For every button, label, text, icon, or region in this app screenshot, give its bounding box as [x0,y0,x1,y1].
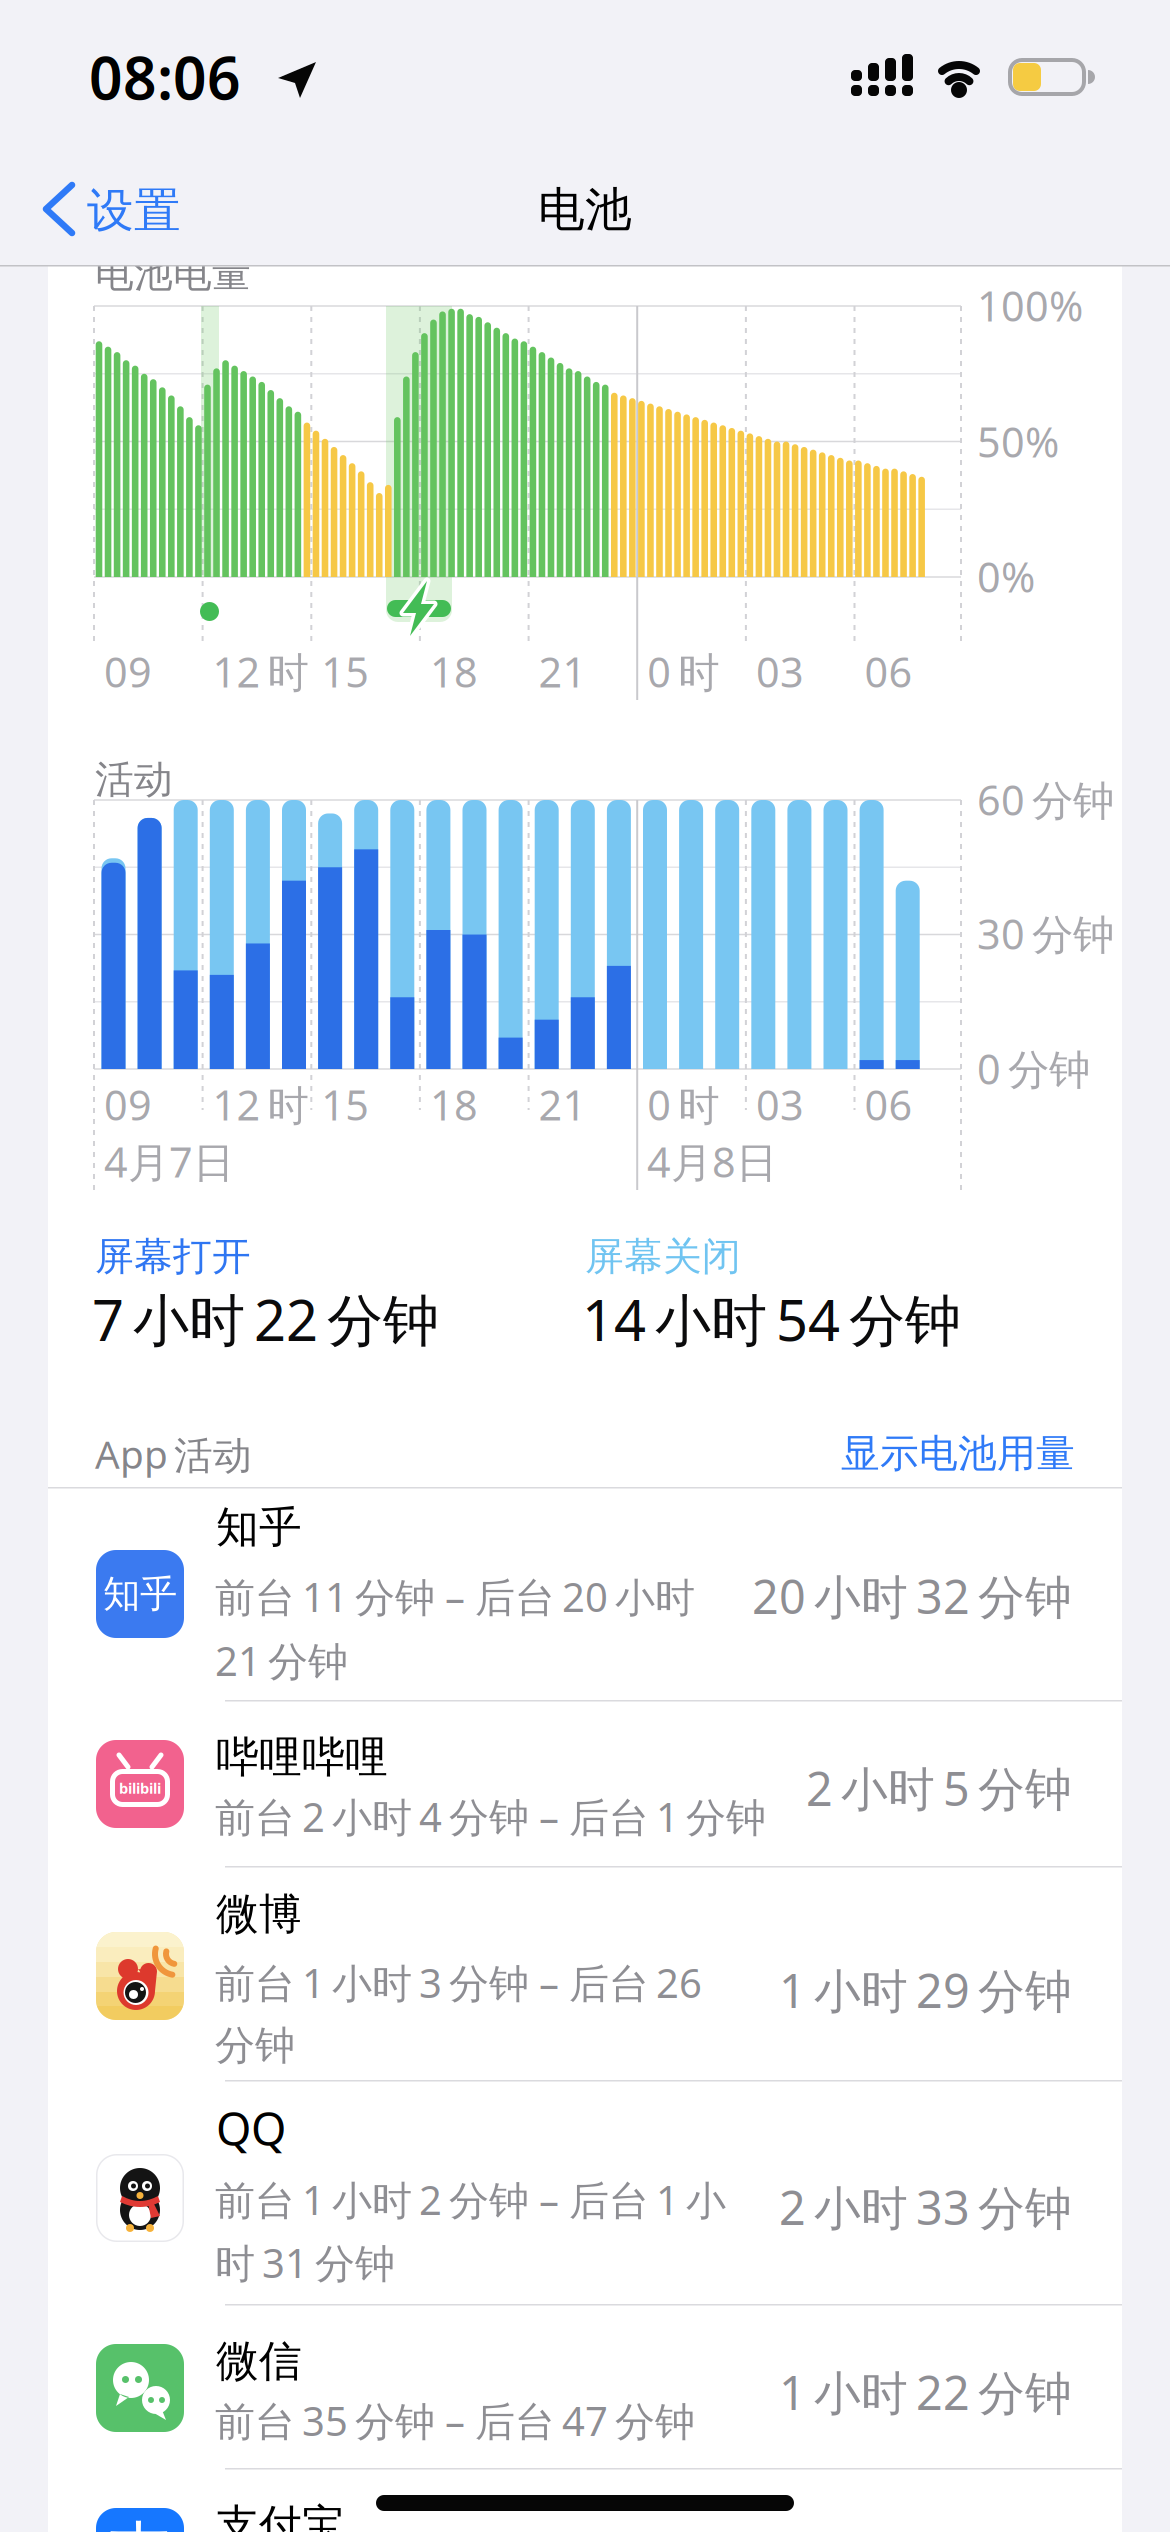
staticText: 哔哩哔哩 [216,1731,388,1783]
staticText: 50% [977,414,1059,469]
staticText: 100% [977,278,1083,333]
button[interactable]: 支 [48,2468,1122,2532]
staticText: 12 时 [213,644,309,699]
staticText: 前台 11 分钟 – 后台 20 小时 [215,1570,695,1623]
staticText: 设置 [87,182,181,239]
staticText: 09 [104,644,152,699]
button[interactable]: bilibili [48,1700,1122,1866]
staticText: 显示电池用量 [841,1430,1075,1477]
staticText: 知乎 [103,1571,177,1617]
staticText: 03 [756,644,804,699]
staticText: 4月8日 [647,1134,777,1189]
staticText: 1 小时 22 分钟 [779,2361,1072,2423]
staticText: 支 [108,2513,172,2532]
staticText: 0 时 [647,1077,719,1132]
staticText: 18 [430,1077,478,1132]
staticText: 0% [977,549,1035,604]
button[interactable]: 返回设置 [30,182,190,244]
staticText: 18 [430,644,478,699]
staticText: 2 小时 5 分钟 [806,1757,1072,1819]
button[interactable]: 知乎 [48,1487,1122,1700]
staticText: 15 [321,1077,369,1132]
staticText: 21 [539,644,587,699]
staticText: 时 31 分钟 [215,2236,395,2289]
staticText: 前台 1 小时 3 分钟 – 后台 26 [215,1956,702,2009]
staticText: 30 分钟 [977,906,1114,961]
staticText: 活动 [95,756,173,803]
staticText: 08:06 [89,38,241,116]
staticText: 09 [104,1077,152,1132]
staticText: 前台 2 小时 4 分钟 – 后台 1 分钟 [215,1790,766,1843]
button[interactable]: QQ [48,2080,1122,2304]
staticText: 知乎 [216,1501,302,1553]
staticText: 14 小时 54 分钟 [582,1282,961,1356]
staticText: 03 [756,1077,804,1132]
staticText: 60 分钟 [977,772,1114,827]
staticText: 电池 [538,181,632,238]
staticText: 屏幕打开 [95,1233,251,1280]
staticText: 12 时 [213,1077,309,1132]
staticText: 4月7日 [104,1134,234,1189]
staticText: 电池电量 [95,250,251,297]
staticText: 06 [864,1077,912,1132]
staticText: 2 小时 33 分钟 [779,2176,1072,2238]
staticText: 1 小时 29 分钟 [779,1959,1072,2021]
button[interactable]: 显示电池用量 [675,1430,1075,1474]
staticText: bilibili [119,1778,161,1798]
staticText: 支付宝 [216,2499,345,2532]
staticText: 06 [864,644,912,699]
staticText: 0 时 [647,644,719,699]
staticText: App 活动 [95,1428,252,1479]
staticText: 微博 [216,1888,302,1940]
staticText: 20 小时 32 分钟 [752,1565,1072,1627]
staticText: 0 分钟 [977,1041,1090,1096]
staticText: 屏幕关闭 [585,1233,741,1280]
staticText: QQ [216,2098,286,2158]
button[interactable]: 微信 [48,2304,1122,2468]
staticText: 前台 1 小时 2 分钟 – 后台 1 小 [215,2173,726,2226]
staticText: 前台 35 分钟 – 后台 47 分钟 [215,2394,695,2447]
staticText: 15 [321,644,369,699]
button[interactable]: 微博 [48,1866,1122,2080]
staticText: 分钟 [215,2021,295,2070]
staticText: 21 分钟 [215,1634,348,1687]
staticText: 21 [539,1077,587,1132]
staticText: 7 小时 22 分钟 [92,1282,439,1356]
staticText: 微信 [216,2335,302,2387]
